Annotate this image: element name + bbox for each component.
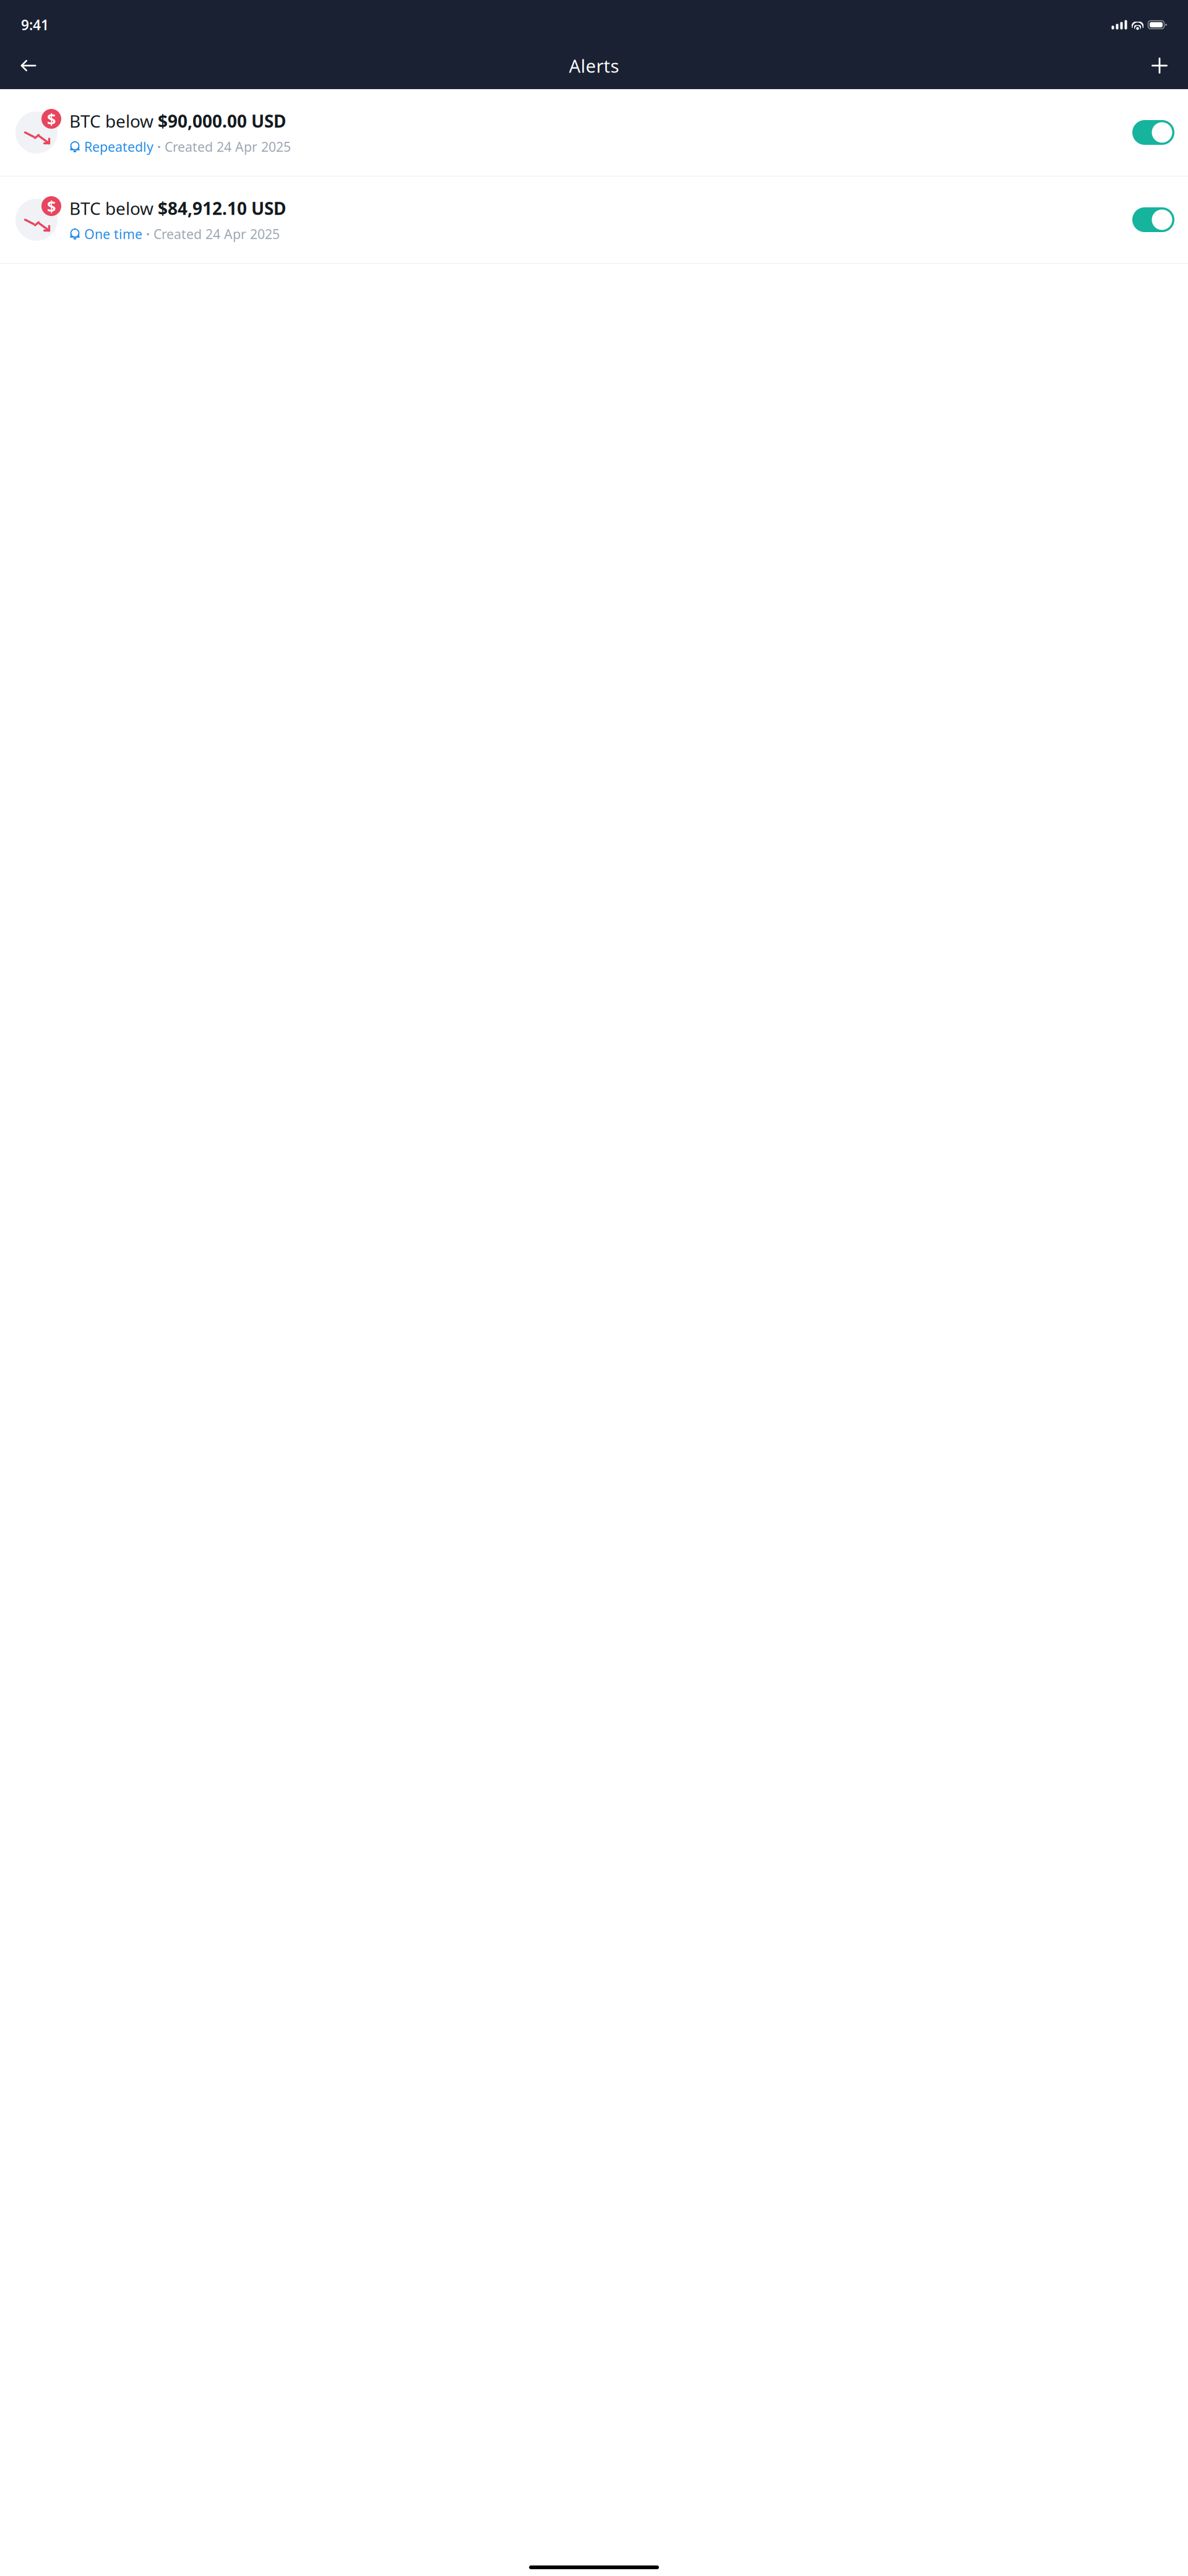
button[interactable]: Add alert	[1146, 52, 1173, 79]
button[interactable]: $	[0, 89, 1188, 176]
staticText: $90,000.00 USD	[158, 109, 286, 132]
staticText: $84,912.10 USD	[158, 197, 286, 220]
staticText: One time	[84, 225, 142, 243]
staticText: 9:41	[21, 15, 49, 34]
staticText: ·	[157, 138, 161, 155]
button[interactable]: $	[0, 176, 1188, 264]
button[interactable]: Back	[15, 52, 42, 79]
staticText: Alerts	[569, 54, 619, 78]
staticText: Repeatedly	[84, 138, 153, 155]
staticText: $	[47, 108, 56, 129]
staticText: BTC below	[69, 109, 158, 132]
staticText: Created 24 Apr 2025	[153, 225, 280, 243]
staticText: ·	[146, 225, 150, 243]
staticText: BTC below	[69, 197, 158, 220]
staticText: Created 24 Apr 2025	[165, 138, 291, 155]
staticText: $	[47, 196, 56, 217]
